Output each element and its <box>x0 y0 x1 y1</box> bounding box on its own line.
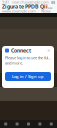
button[interactable]: Share <box>23 120 34 128</box>
staticText: Connect <box>11 47 31 54</box>
staticText: and more. <box>5 60 23 66</box>
button[interactable]: Log in / Sign up <box>5 72 51 81</box>
staticText: Log in / Sign up <box>12 74 44 79</box>
button[interactable]: Bookmarks <box>34 120 46 128</box>
button[interactable]: Back <box>0 120 11 128</box>
button[interactable]: Tabs <box>46 120 57 128</box>
staticText: ▮▮ <box>51 0 55 4</box>
staticText: Please log in to see the full content <box>5 55 51 60</box>
staticText: 9:41 search.example.com <box>2 0 49 5</box>
staticText: Zigura te PPDB Qiimeo Wordless <box>2 3 55 10</box>
button[interactable]: Forward <box>11 120 23 128</box>
staticText: www.example.com · News <box>2 8 51 14</box>
staticText: ✕ <box>47 48 50 53</box>
button[interactable]: Close <box>46 48 51 53</box>
